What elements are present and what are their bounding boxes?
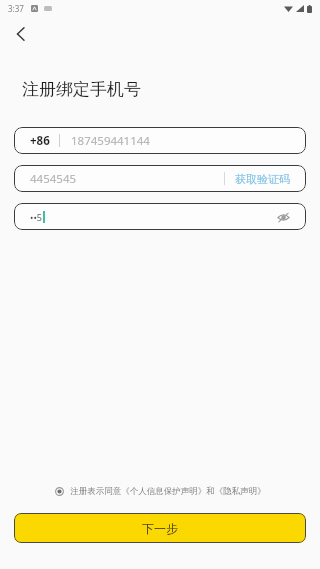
staticText: 187459441144 bbox=[71, 133, 150, 149]
button[interactable]: +86 bbox=[14, 127, 306, 154]
staticText: 下一步 bbox=[142, 521, 178, 536]
button[interactable]: 注册表示同意《个人信息保护声明》和《隐私声明》 bbox=[0, 481, 320, 502]
staticText: 获取验证码 bbox=[235, 172, 290, 186]
button[interactable]: ••5 bbox=[14, 203, 306, 230]
button[interactable]: 下一步 bbox=[14, 513, 306, 543]
staticText: 注册绑定手机号 bbox=[22, 79, 141, 100]
staticText: 3:37 bbox=[8, 3, 24, 14]
button[interactable]: Show password bbox=[273, 207, 293, 227]
staticText: 注册表示同意《个人信息保护声明》和《隐私声明》 bbox=[70, 486, 266, 497]
staticText: 4454545 bbox=[30, 171, 224, 187]
staticText: ••5 bbox=[30, 211, 42, 223]
staticText: +86 bbox=[30, 133, 50, 149]
button[interactable]: 获取验证码 bbox=[225, 168, 292, 190]
button[interactable]: Back bbox=[5, 19, 35, 49]
button[interactable]: 4454545 bbox=[14, 165, 306, 192]
